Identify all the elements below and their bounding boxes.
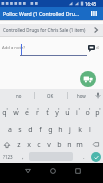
button[interactable]	[80, 71, 96, 87]
button[interactable]	[46, 164, 59, 177]
staticText: x0	[96, 46, 100, 50]
staticText: Add a note?	[2, 45, 26, 51]
button[interactable]: how	[67, 89, 95, 102]
staticText: 16:45	[85, 1, 97, 7]
button[interactable]	[71, 164, 84, 177]
button[interactable]: e	[21, 106, 32, 119]
staticText: e	[25, 108, 29, 118]
staticText: a	[8, 125, 12, 135]
staticText: ?123	[3, 154, 13, 160]
button[interactable]: s	[15, 123, 25, 136]
staticText: q	[2, 108, 7, 118]
button[interactable]: k	[75, 123, 85, 136]
staticText: r	[36, 108, 39, 118]
button[interactable]	[91, 152, 101, 162]
staticText: Controlled Drugs for Chris Sale (1 item)	[3, 27, 95, 33]
staticText: ,	[22, 153, 24, 161]
button[interactable]	[84, 138, 103, 151]
button[interactable]: z	[13, 138, 24, 151]
staticText: m	[76, 140, 83, 150]
button[interactable]: u	[62, 106, 72, 119]
button[interactable]: ?123	[1, 149, 15, 165]
staticText: z	[17, 140, 21, 150]
button[interactable]: j	[65, 123, 75, 136]
staticText: s	[18, 125, 22, 135]
staticText: i	[76, 108, 78, 118]
staticText: how	[77, 93, 86, 99]
staticText: u	[65, 108, 70, 118]
staticText: d	[28, 125, 33, 135]
staticText: .	[83, 153, 85, 161]
button[interactable]: no	[4, 89, 33, 102]
button[interactable]: m	[74, 138, 84, 151]
button[interactable]: w	[10, 106, 21, 119]
button[interactable]: o	[82, 106, 92, 119]
button[interactable]: ,	[18, 149, 27, 165]
button[interactable]: l	[85, 123, 95, 136]
button[interactable]: OK	[36, 89, 64, 102]
button[interactable]: p	[92, 106, 102, 119]
button[interactable]: r	[32, 106, 42, 119]
button[interactable]: n	[64, 138, 74, 151]
button[interactable]: d	[25, 123, 35, 136]
button[interactable]: v	[44, 138, 54, 151]
button[interactable]	[0, 138, 13, 151]
button[interactable]: x	[24, 138, 34, 151]
staticText: g	[48, 125, 53, 135]
staticText: OK	[47, 93, 54, 99]
button[interactable]: t	[42, 106, 52, 119]
button[interactable]: q	[0, 106, 10, 119]
staticText: Polloc Ward (1 Controlled Dru...	[3, 10, 90, 17]
button[interactable]: .	[79, 149, 88, 165]
button[interactable]	[21, 164, 34, 177]
button[interactable]	[91, 11, 97, 16]
button[interactable]: a	[4, 123, 15, 136]
staticText: n	[67, 140, 72, 150]
button[interactable]: i	[72, 106, 82, 119]
button[interactable]	[95, 92, 101, 100]
staticText: y	[55, 108, 59, 118]
button[interactable]: h	[55, 123, 65, 136]
staticText: x	[27, 140, 31, 150]
staticText: v	[47, 140, 51, 150]
staticText: h	[58, 125, 63, 135]
staticText: j	[69, 125, 71, 135]
staticText: f	[39, 125, 42, 135]
staticText: c	[37, 140, 41, 150]
staticText: no	[16, 93, 22, 99]
staticText: w	[13, 108, 19, 118]
staticText: b	[57, 140, 62, 150]
staticText: p	[95, 108, 100, 118]
button[interactable]: Controlled Drugs for Chris Sale (1 item)	[0, 24, 103, 36]
staticText: t	[46, 108, 49, 118]
button[interactable]: b	[54, 138, 64, 151]
button[interactable]: g	[45, 123, 55, 136]
staticText: o	[85, 108, 90, 118]
button[interactable]: f	[35, 123, 45, 136]
button[interactable]: c	[34, 138, 44, 151]
staticText: k	[78, 125, 82, 135]
button[interactable]: y	[52, 106, 62, 119]
staticText: l	[89, 125, 91, 135]
button[interactable]	[88, 45, 96, 53]
